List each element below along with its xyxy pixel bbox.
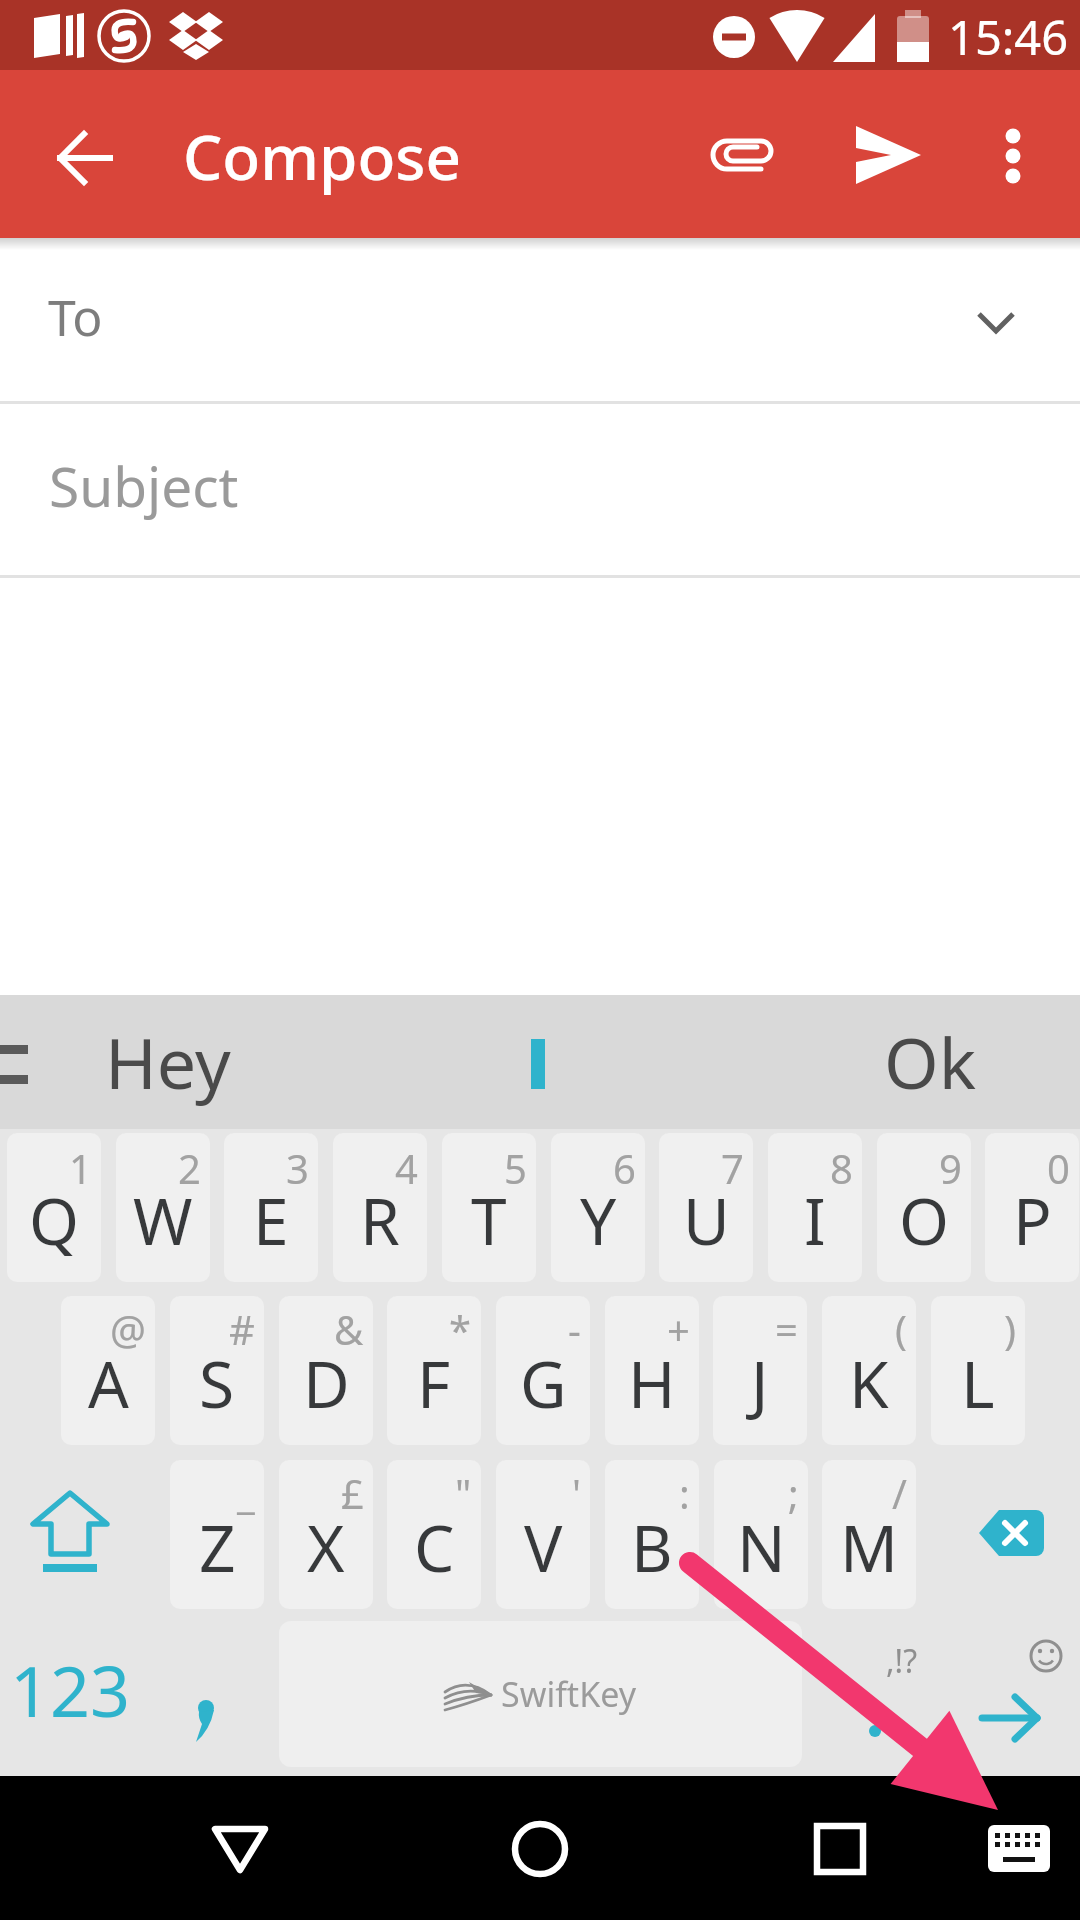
- staticText: J: [751, 1340, 769, 1427]
- staticText: 3: [286, 1141, 309, 1195]
- staticText: 15:46: [948, 5, 1069, 69]
- button[interactable]: [955, 1460, 1080, 1609]
- button[interactable]: [10, 1460, 150, 1609]
- staticText: P: [1013, 1177, 1052, 1264]
- staticText: 9: [939, 1141, 962, 1195]
- button[interactable]: Y: [551, 1133, 645, 1282]
- staticText: N: [737, 1504, 786, 1591]
- button[interactable]: C: [387, 1460, 481, 1609]
- button[interactable]: [843, 110, 933, 200]
- button[interactable]: S: [170, 1296, 264, 1445]
- staticText: /: [892, 1466, 907, 1520]
- staticText: Hey: [105, 1014, 231, 1109]
- staticText: 7: [721, 1141, 744, 1195]
- staticText: £: [341, 1466, 364, 1520]
- staticText: R: [360, 1177, 400, 1264]
- staticText: S: [199, 1340, 235, 1427]
- staticText: C: [414, 1504, 455, 1591]
- button[interactable]: G: [496, 1296, 590, 1445]
- button[interactable]: [945, 1623, 1080, 1772]
- staticText: SwiftKey: [501, 1671, 637, 1717]
- staticText: ,!?: [886, 1639, 918, 1683]
- button[interactable]: Z: [170, 1460, 264, 1609]
- staticText: U: [683, 1177, 730, 1264]
- button[interactable]: [740, 995, 1060, 1129]
- staticText: 8: [830, 1141, 853, 1195]
- staticText: W: [133, 1177, 193, 1264]
- button[interactable]: Q: [7, 1133, 101, 1282]
- button[interactable]: K: [822, 1296, 916, 1445]
- staticText: F: [417, 1340, 451, 1427]
- staticText: To: [48, 283, 103, 351]
- button[interactable]: [699, 110, 789, 200]
- staticText: Subject: [49, 448, 239, 523]
- staticText: ;: [788, 1466, 799, 1520]
- staticText: 6: [613, 1141, 636, 1195]
- button[interactable]: SwiftKey: [279, 1621, 802, 1767]
- button[interactable]: [40, 113, 130, 203]
- staticText: :: [679, 1466, 690, 1520]
- button[interactable]: U: [659, 1133, 753, 1282]
- staticText: 4: [395, 1141, 418, 1195]
- staticText: Compose: [183, 114, 462, 198]
- staticText: @: [110, 1302, 146, 1356]
- staticText: Z: [199, 1504, 236, 1591]
- staticText: _: [237, 1466, 255, 1520]
- staticText: M: [840, 1504, 899, 1591]
- staticText: H: [628, 1340, 676, 1427]
- button[interactable]: [0, 1623, 160, 1772]
- staticText: +: [667, 1302, 690, 1356]
- staticText: T: [471, 1177, 507, 1264]
- button[interactable]: T: [442, 1133, 536, 1282]
- button[interactable]: [968, 110, 1058, 200]
- button[interactable]: A: [61, 1296, 155, 1445]
- staticText: O: [899, 1177, 949, 1264]
- button[interactable]: [480, 1788, 600, 1908]
- button[interactable]: O: [877, 1133, 971, 1282]
- staticText: Ok: [884, 1014, 977, 1109]
- button[interactable]: E: [224, 1133, 318, 1282]
- button[interactable]: [160, 1623, 260, 1772]
- button[interactable]: W: [116, 1133, 210, 1282]
- staticText: E: [253, 1177, 289, 1264]
- staticText: 5: [504, 1141, 527, 1195]
- button[interactable]: V: [496, 1460, 590, 1609]
- staticText: -: [568, 1302, 581, 1356]
- staticText: D: [303, 1340, 350, 1427]
- button[interactable]: R: [333, 1133, 427, 1282]
- staticText: *: [449, 1302, 472, 1356]
- staticText: 1: [69, 1141, 92, 1195]
- staticText: X: [307, 1504, 345, 1591]
- button[interactable]: [0, 250, 1080, 401]
- staticText: ": [455, 1466, 472, 1520]
- button[interactable]: H: [605, 1296, 699, 1445]
- button[interactable]: ,!?: [810, 1623, 940, 1772]
- staticText: I: [804, 1177, 826, 1264]
- button[interactable]: [180, 1788, 300, 1908]
- button[interactable]: M: [822, 1460, 916, 1609]
- button[interactable]: J: [713, 1296, 807, 1445]
- staticText: K: [849, 1340, 889, 1427]
- button[interactable]: F: [387, 1296, 481, 1445]
- staticText: (: [895, 1302, 907, 1356]
- staticText: Q: [29, 1177, 79, 1264]
- button[interactable]: [0, 404, 1080, 575]
- staticText: #: [229, 1302, 255, 1356]
- staticText: 0: [1047, 1141, 1070, 1195]
- button[interactable]: P: [985, 1133, 1079, 1282]
- staticText: A: [88, 1340, 129, 1427]
- button[interactable]: D: [279, 1296, 373, 1445]
- button[interactable]: I: [768, 1133, 862, 1282]
- staticText: &: [334, 1302, 364, 1356]
- button[interactable]: [975, 1805, 1065, 1895]
- button[interactable]: B: [605, 1460, 699, 1609]
- button[interactable]: L: [931, 1296, 1025, 1445]
- staticText: B: [631, 1504, 673, 1591]
- button[interactable]: N: [714, 1460, 808, 1609]
- staticText: =: [775, 1302, 798, 1356]
- staticText: L: [961, 1340, 995, 1427]
- button[interactable]: [780, 1788, 900, 1908]
- staticText: ): [1004, 1302, 1016, 1356]
- button[interactable]: X: [279, 1460, 373, 1609]
- button[interactable]: [40, 995, 360, 1129]
